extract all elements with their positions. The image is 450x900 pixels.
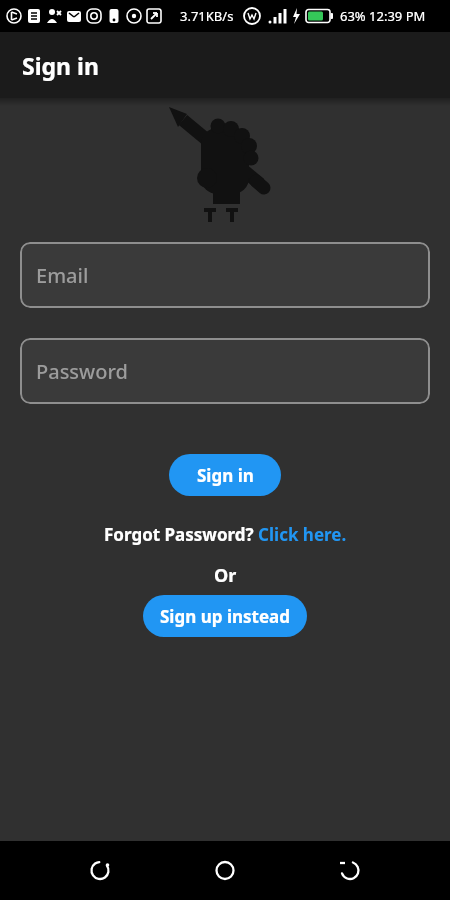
staticText: 63% 12:39 PM <box>340 7 426 25</box>
staticText: Email <box>36 262 89 289</box>
staticText: 3.71KB/s <box>180 7 234 25</box>
staticText: Sign in <box>197 464 254 487</box>
button[interactable] <box>150 841 300 900</box>
staticText: Or <box>214 563 237 588</box>
staticText: Password <box>36 358 128 385</box>
button[interactable]: Sign up instead <box>143 595 307 637</box>
button[interactable] <box>300 841 450 900</box>
staticText: Sign in <box>22 50 99 81</box>
button[interactable]: Email <box>20 242 430 308</box>
button[interactable]: Sign in <box>169 454 281 496</box>
staticText: Sign up instead <box>160 605 290 628</box>
button[interactable]: Forgot Password? Click here. <box>104 523 347 546</box>
button[interactable]: Password <box>20 338 430 404</box>
button[interactable] <box>0 841 150 900</box>
